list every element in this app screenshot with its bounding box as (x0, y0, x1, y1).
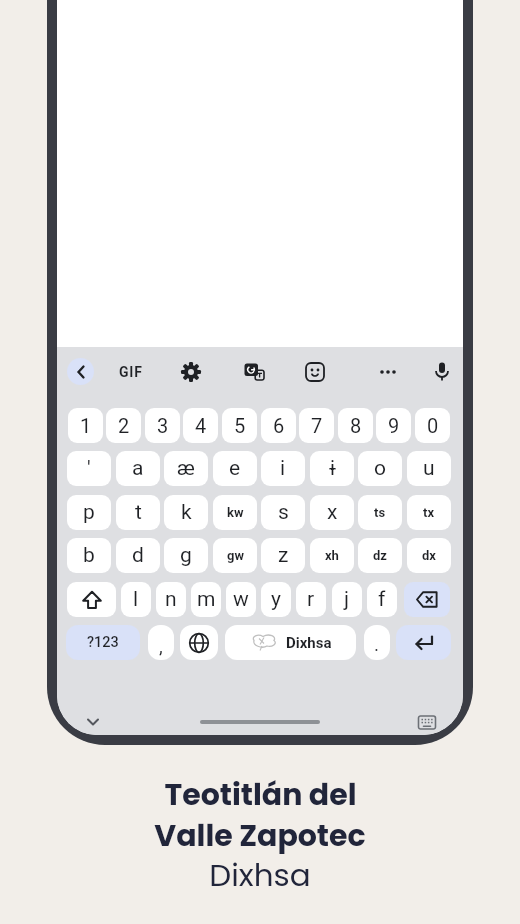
staticText: 2 (118, 414, 130, 437)
button[interactable]: b (67, 538, 111, 573)
button[interactable]: . (364, 625, 390, 660)
staticText: tx (423, 505, 435, 520)
staticText: . (374, 633, 380, 655)
button[interactable]: g (164, 538, 208, 573)
staticText: dz (373, 548, 387, 563)
button[interactable] (430, 360, 454, 384)
button[interactable]: w (226, 582, 256, 617)
staticText: i (280, 456, 286, 481)
button[interactable] (85, 714, 101, 730)
staticText: d (132, 543, 144, 568)
staticText: 3 (157, 414, 169, 437)
button[interactable]: n (156, 582, 186, 617)
staticText: 7 (311, 414, 323, 437)
staticText: w (233, 587, 249, 612)
button[interactable]: dx (407, 538, 451, 573)
button[interactable]: 6 (261, 408, 296, 443)
staticText: f (378, 587, 386, 612)
staticText: Dixhsa (286, 634, 332, 652)
staticText: , (159, 635, 163, 657)
staticText: Dixhsa (209, 853, 311, 896)
button[interactable]: r (296, 582, 326, 617)
staticText: o (374, 456, 386, 481)
staticText: l (133, 587, 139, 612)
staticText: j (344, 587, 350, 612)
staticText: ts (374, 505, 386, 520)
button[interactable]: 7 (299, 408, 334, 443)
staticText: t (135, 500, 142, 525)
button[interactable]: 5 (222, 408, 257, 443)
button[interactable]: e (213, 451, 257, 486)
button[interactable]: 8 (338, 408, 373, 443)
staticText: Valle Zapotec (154, 815, 366, 857)
button[interactable]: d (116, 538, 160, 573)
button[interactable]: ' (67, 451, 111, 486)
button[interactable] (303, 360, 327, 384)
staticText: m (197, 587, 216, 612)
staticText: 0 (427, 414, 439, 437)
button[interactable] (180, 625, 218, 660)
button[interactable]: l (121, 582, 151, 617)
button[interactable] (378, 362, 398, 382)
button[interactable] (242, 360, 266, 384)
button[interactable]: y (261, 582, 291, 617)
button[interactable]: GIF (109, 361, 153, 383)
button[interactable]: 0 (415, 408, 450, 443)
button[interactable]: s (261, 495, 305, 530)
button[interactable]: 3 (145, 408, 180, 443)
button[interactable]: dz (358, 538, 402, 573)
staticText: gw (227, 548, 244, 563)
button[interactable]: x (310, 495, 354, 530)
button[interactable] (396, 625, 451, 660)
button[interactable]: o (358, 451, 402, 486)
button[interactable]: ɨ (310, 451, 354, 486)
staticText: æ (177, 456, 195, 481)
button[interactable] (67, 582, 116, 617)
button[interactable]: p (67, 495, 111, 530)
staticText: GIF (119, 364, 143, 380)
button[interactable]: 2 (106, 408, 141, 443)
button[interactable]: m (191, 582, 221, 617)
button[interactable]: f (367, 582, 397, 617)
button[interactable]: 9 (376, 408, 411, 443)
staticText: s (278, 500, 289, 525)
button[interactable]: kw (213, 495, 257, 530)
button[interactable] (67, 358, 94, 385)
button[interactable]: t (116, 495, 160, 530)
staticText: u (423, 456, 435, 481)
button[interactable]: k (164, 495, 208, 530)
button[interactable]: Dixhsa (225, 625, 356, 660)
staticText: p (83, 500, 95, 525)
staticText: 5 (234, 414, 246, 437)
staticText: a (132, 456, 144, 481)
staticText: xh (325, 548, 339, 563)
button[interactable] (404, 582, 450, 617)
staticText: ɨ (329, 456, 336, 481)
staticText: 6 (273, 414, 285, 437)
button[interactable]: xh (310, 538, 354, 573)
button[interactable]: gw (213, 538, 257, 573)
staticText: 8 (350, 414, 362, 437)
button[interactable]: 4 (183, 408, 218, 443)
button[interactable]: z (261, 538, 305, 573)
staticText: b (83, 543, 95, 568)
staticText: x (327, 500, 338, 525)
button[interactable] (417, 713, 437, 733)
button[interactable]: 1 (68, 408, 103, 443)
staticText: ' (87, 456, 91, 481)
staticText: ?123 (87, 634, 119, 651)
button[interactable]: , (148, 625, 174, 660)
staticText: dx (422, 548, 436, 563)
staticText: r (307, 587, 315, 612)
button[interactable]: æ (164, 451, 208, 486)
button[interactable] (179, 360, 203, 384)
button[interactable]: u (407, 451, 451, 486)
button[interactable]: i (261, 451, 305, 486)
staticText: g (180, 543, 192, 568)
button[interactable]: tx (407, 495, 451, 530)
button[interactable]: ts (358, 495, 402, 530)
staticText: Teotitlán del (164, 774, 357, 816)
button[interactable]: a (116, 451, 160, 486)
button[interactable]: ?123 (66, 625, 140, 660)
button[interactable]: j (332, 582, 362, 617)
